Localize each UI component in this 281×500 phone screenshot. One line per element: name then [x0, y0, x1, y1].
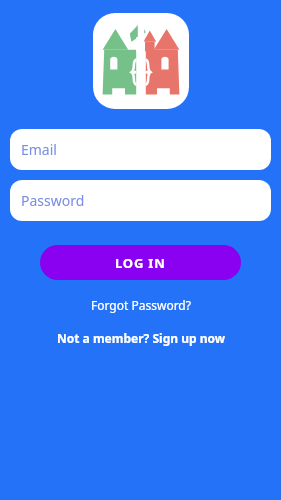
staticText: LOG IN [115, 254, 166, 272]
staticText: Password [21, 191, 85, 210]
button[interactable]: LOG IN [40, 245, 241, 280]
staticText: Email [21, 140, 57, 159]
staticText: Forgot Password? [91, 297, 191, 313]
button[interactable]: Forgot Password? [83, 294, 199, 316]
staticText: Not a member? Sign up now [57, 330, 225, 346]
button[interactable]: Email [10, 129, 271, 170]
button[interactable]: Password [10, 180, 271, 221]
button[interactable]: Not a member? Sign up now [49, 327, 233, 349]
